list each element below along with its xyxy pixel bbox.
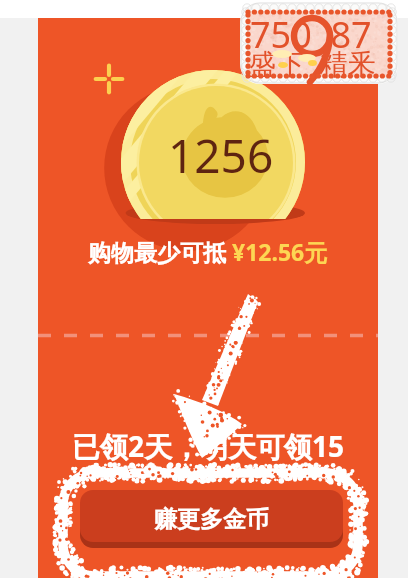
staticText: 已领2天，明天可领15 [72, 427, 345, 465]
button[interactable]: 赚更多金币 [80, 490, 343, 548]
staticText: 750 87 [250, 10, 372, 59]
staticText: 购物最少可抵 [88, 236, 232, 267]
staticText: ¥12.56元 [232, 236, 328, 267]
staticText: 1256 [168, 124, 274, 184]
staticText: 盛下 精釆 [249, 44, 376, 82]
other: Promotion stamp [236, 0, 402, 88]
staticText: 赚更多金币 [154, 505, 269, 534]
